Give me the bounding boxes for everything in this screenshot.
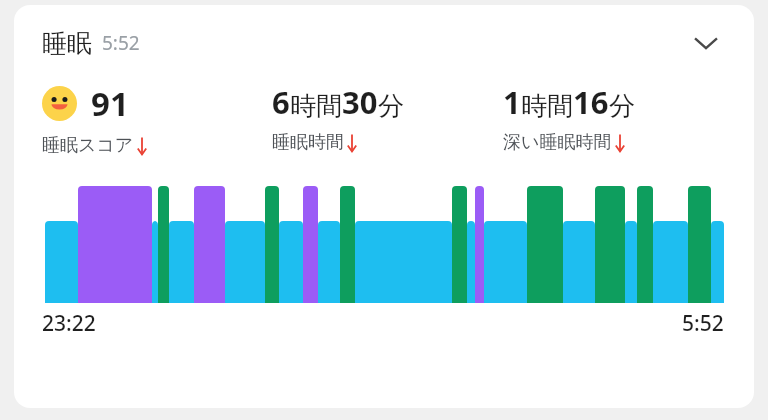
staticText: 時間 xyxy=(290,90,342,123)
staticText: 5:52 xyxy=(102,30,140,56)
staticText: 30 xyxy=(342,81,378,123)
staticText: 23:22 xyxy=(42,309,96,338)
staticText: 6 xyxy=(272,81,290,123)
staticText: 16 xyxy=(573,81,609,123)
staticText: 91 xyxy=(91,81,129,126)
staticText: 分 xyxy=(609,90,635,123)
staticText: 時間 xyxy=(521,90,573,123)
staticText: 深い睡眠時間 xyxy=(503,131,612,154)
staticText: 睡眠時間 xyxy=(272,131,344,154)
button[interactable]: 睡眠 xyxy=(14,5,754,408)
staticText: 5:52 xyxy=(682,309,724,338)
staticText: 1 xyxy=(503,81,521,123)
staticText: 分 xyxy=(378,90,404,123)
staticText: 睡眠スコア xyxy=(42,134,134,157)
button[interactable]: Collapse sleep card xyxy=(682,19,730,67)
staticText: 睡眠 xyxy=(42,28,92,59)
